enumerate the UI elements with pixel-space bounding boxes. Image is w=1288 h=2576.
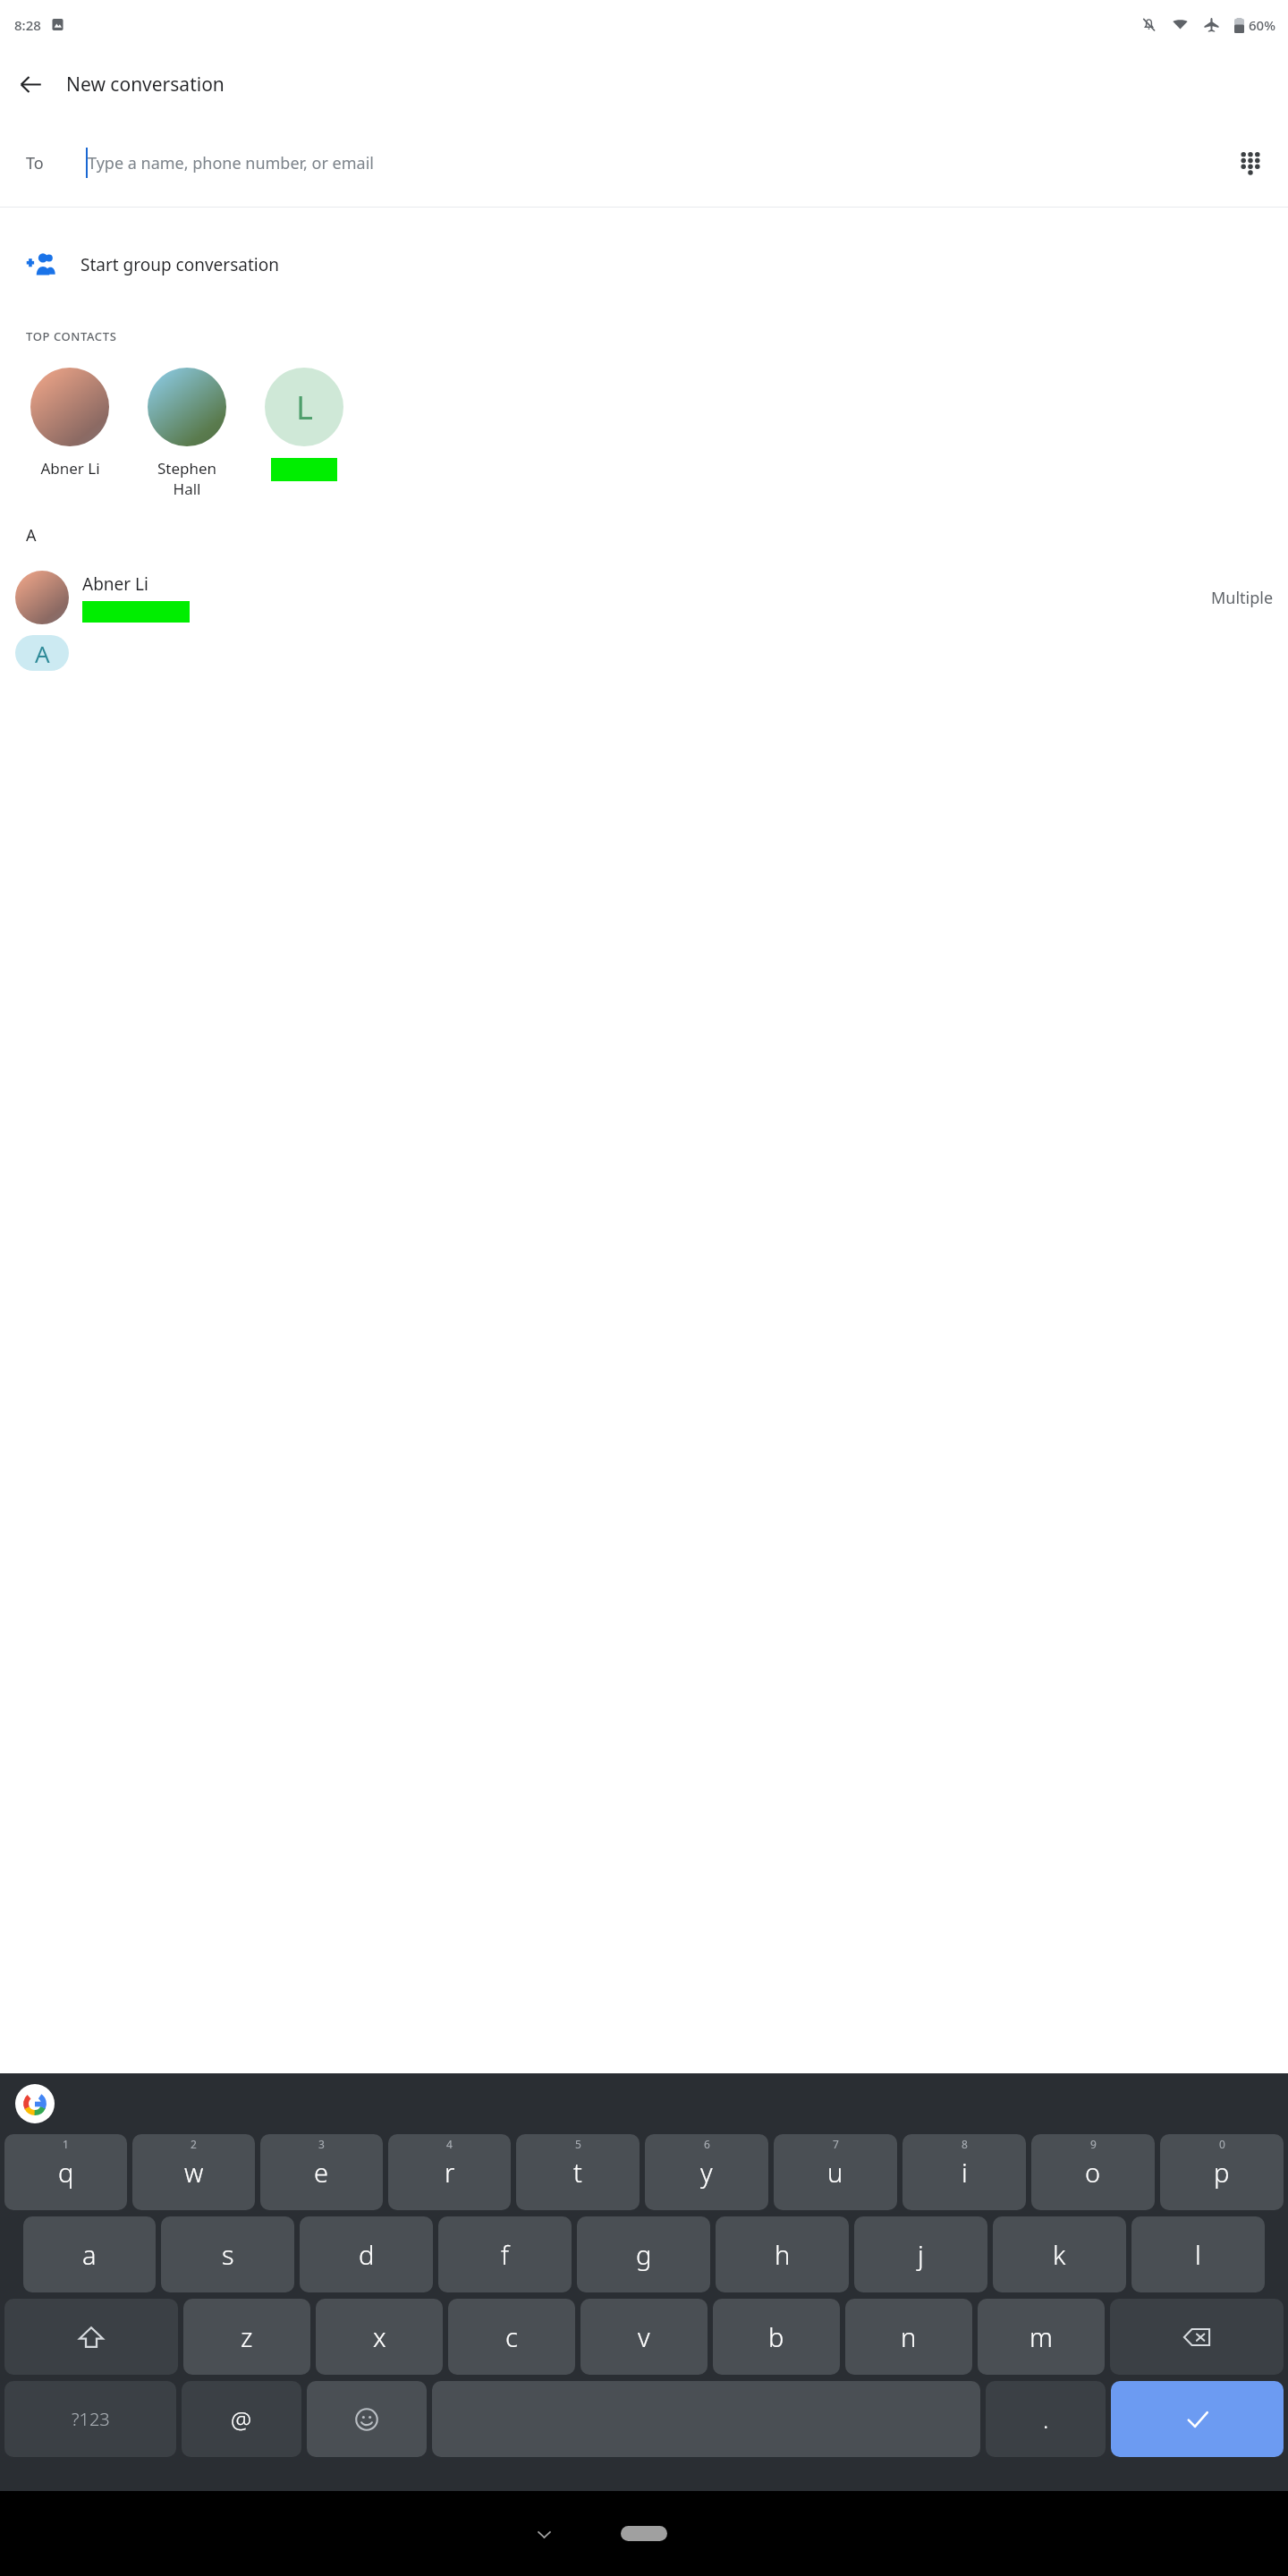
button[interactable]: d bbox=[300, 2216, 433, 2292]
staticText: A bbox=[26, 524, 37, 547]
button[interactable]: ?123 bbox=[4, 2381, 176, 2457]
button[interactable]: j bbox=[854, 2216, 987, 2292]
staticText: x bbox=[373, 2319, 386, 2354]
button[interactable]: f bbox=[438, 2216, 572, 2292]
button[interactable]: c bbox=[448, 2299, 575, 2375]
button[interactable]: v bbox=[580, 2299, 708, 2375]
staticText: w bbox=[184, 2155, 204, 2190]
staticText: 8:28 bbox=[14, 16, 41, 34]
staticText: a bbox=[82, 2237, 97, 2272]
staticText: n bbox=[901, 2319, 917, 2354]
staticText: TOP CONTACTS bbox=[26, 328, 117, 344]
staticText: z bbox=[241, 2319, 253, 2354]
staticText: u bbox=[827, 2155, 843, 2190]
staticText: Abner Li bbox=[40, 458, 100, 479]
button[interactable]: Home bbox=[621, 2526, 667, 2541]
staticText: l bbox=[1195, 2237, 1201, 2272]
button[interactable]: h bbox=[716, 2216, 849, 2292]
button[interactable]: 1 bbox=[4, 2134, 127, 2210]
staticText: Abner Li bbox=[82, 572, 148, 596]
button[interactable]: 8 bbox=[902, 2134, 1026, 2210]
button[interactable]: Backspace bbox=[1110, 2299, 1284, 2375]
staticText: 8 bbox=[962, 2137, 968, 2151]
staticText: 2 bbox=[191, 2137, 197, 2151]
staticText: f bbox=[501, 2237, 509, 2272]
button[interactable]: Start group conversation bbox=[0, 230, 1288, 300]
button[interactable]: Space bbox=[432, 2381, 980, 2457]
button[interactable]: @ bbox=[182, 2381, 301, 2457]
staticText: v bbox=[638, 2319, 650, 2354]
button[interactable]: Emoji bbox=[307, 2381, 427, 2457]
button[interactable]: 7 bbox=[774, 2134, 897, 2210]
staticText: Type a name, phone number, or email bbox=[88, 152, 374, 174]
button[interactable]: Back bbox=[5, 59, 55, 109]
button[interactable]: s bbox=[161, 2216, 294, 2292]
button[interactable]: . bbox=[986, 2381, 1106, 2457]
button[interactable]: x bbox=[316, 2299, 443, 2375]
button[interactable]: 4 bbox=[388, 2134, 511, 2210]
button[interactable]: To bbox=[0, 119, 1288, 207]
staticText: 9 bbox=[1090, 2137, 1097, 2151]
button[interactable]: g bbox=[577, 2216, 710, 2292]
staticText: Stephen Hall bbox=[142, 458, 232, 499]
staticText: j bbox=[918, 2237, 924, 2272]
button[interactable]: Hide keyboard bbox=[521, 2512, 566, 2556]
staticText: b bbox=[768, 2319, 784, 2354]
staticText: ?123 bbox=[72, 2407, 110, 2431]
staticText: 6 bbox=[704, 2137, 710, 2151]
staticText: New conversation bbox=[66, 72, 225, 97]
staticText: 5 bbox=[575, 2137, 581, 2151]
other: Backspace bbox=[1182, 2323, 1211, 2351]
staticText: i bbox=[962, 2155, 968, 2190]
button[interactable]: Dial pad bbox=[1225, 138, 1275, 188]
button[interactable]: Abner Li bbox=[0, 560, 1288, 635]
button[interactable]: Shift bbox=[4, 2299, 178, 2375]
staticText: c bbox=[505, 2319, 518, 2354]
button[interactable]: k bbox=[993, 2216, 1126, 2292]
staticText: o bbox=[1085, 2155, 1101, 2190]
staticText: L bbox=[296, 386, 313, 429]
staticText: Start group conversation bbox=[80, 253, 279, 276]
button[interactable]: 5 bbox=[516, 2134, 640, 2210]
staticText: g bbox=[636, 2237, 652, 2272]
button[interactable]: z bbox=[183, 2299, 310, 2375]
staticText: A bbox=[35, 638, 50, 669]
other: Emoji bbox=[354, 2407, 379, 2432]
staticText: e bbox=[314, 2155, 329, 2190]
staticText: q bbox=[58, 2155, 74, 2190]
staticText: s bbox=[222, 2237, 234, 2272]
button[interactable]: 0 bbox=[1160, 2134, 1284, 2210]
staticText: @ bbox=[231, 2403, 252, 2435]
staticText: t bbox=[573, 2155, 582, 2190]
staticText: k bbox=[1053, 2237, 1066, 2272]
button[interactable]: 9 bbox=[1031, 2134, 1155, 2210]
staticText: m bbox=[1030, 2319, 1053, 2354]
button[interactable]: Stephen Hall bbox=[142, 368, 232, 499]
button[interactable]: Done bbox=[1111, 2381, 1284, 2457]
staticText: d bbox=[359, 2237, 375, 2272]
button[interactable]: 3 bbox=[260, 2134, 383, 2210]
staticText: 1 bbox=[63, 2137, 69, 2151]
staticText: To bbox=[26, 152, 44, 174]
button[interactable]: b bbox=[713, 2299, 840, 2375]
other: Done bbox=[1184, 2406, 1211, 2433]
button[interactable]: n bbox=[845, 2299, 972, 2375]
button[interactable]: l bbox=[1131, 2216, 1265, 2292]
button[interactable]: m bbox=[978, 2299, 1105, 2375]
staticText: . bbox=[1043, 2403, 1049, 2435]
button[interactable]: 6 bbox=[645, 2134, 768, 2210]
button[interactable]: L bbox=[259, 368, 349, 481]
button[interactable]: Google bbox=[15, 2084, 55, 2123]
button[interactable]: Abner Li bbox=[25, 368, 114, 479]
staticText: 7 bbox=[833, 2137, 839, 2151]
staticText: y bbox=[700, 2155, 713, 2190]
staticText: h bbox=[775, 2237, 791, 2272]
staticText: r bbox=[445, 2155, 455, 2190]
button[interactable]: a bbox=[23, 2216, 156, 2292]
staticText: 60% bbox=[1249, 16, 1275, 34]
staticText: 0 bbox=[1219, 2137, 1225, 2151]
staticText: Multiple bbox=[1211, 587, 1274, 609]
staticText: p bbox=[1214, 2155, 1230, 2190]
button[interactable]: 2 bbox=[132, 2134, 255, 2210]
other: Shift bbox=[78, 2324, 105, 2351]
